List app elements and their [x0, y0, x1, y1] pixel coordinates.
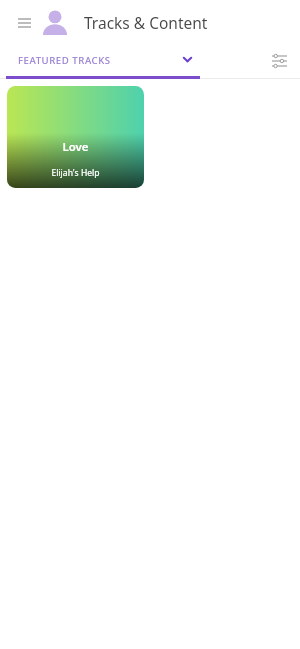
staticText: Elijah's Help: [51, 167, 100, 179]
staticText: Love: [62, 139, 89, 155]
button[interactable]: Menu: [10, 8, 38, 38]
button[interactable]: Account: [41, 6, 69, 40]
button[interactable]: FEATURED TRACKS: [0, 45, 200, 76]
button[interactable]: Filter: [264, 46, 294, 76]
staticText: FEATURED TRACKS: [18, 54, 111, 67]
button[interactable]: Love: [7, 86, 144, 188]
staticText: Tracks & Content: [84, 12, 208, 33]
